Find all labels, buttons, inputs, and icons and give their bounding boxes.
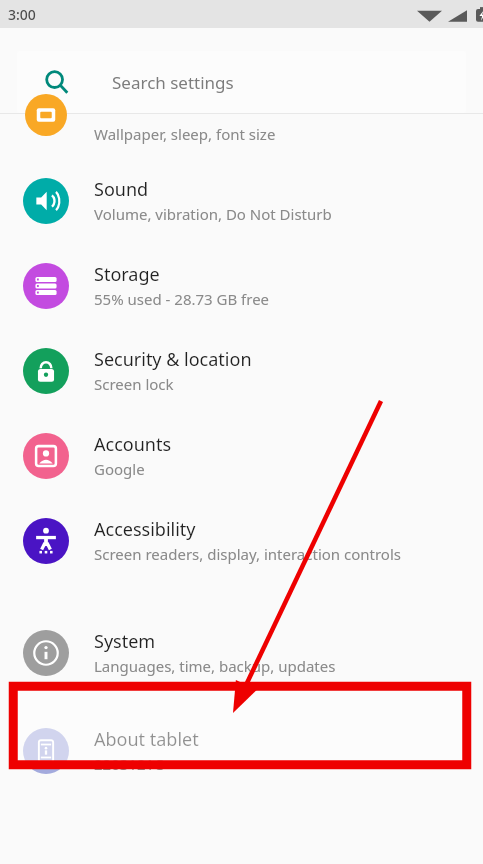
button[interactable]: About tablet (0, 708, 483, 793)
other: Status icons (405, 6, 477, 22)
staticText: Storage (94, 262, 160, 287)
button[interactable]: Wallpaper, sleep, font size (0, 116, 483, 158)
staticText: 3:00 (8, 5, 36, 24)
button[interactable]: Sound (0, 158, 483, 243)
staticText: Languages, time, backup, updates (94, 656, 336, 676)
button[interactable]: Storage (0, 243, 483, 328)
staticText: About tablet (94, 727, 199, 752)
staticText: Screen lock (94, 374, 174, 394)
staticText: System (94, 629, 156, 654)
button[interactable]: Accounts (0, 413, 483, 498)
staticText: Google (94, 459, 145, 479)
button[interactable]: Accessibility (0, 498, 483, 583)
staticText: Sound (94, 177, 149, 202)
staticText: Wallpaper, sleep, font size (94, 124, 276, 144)
staticText: Volume, vibration, Do Not Disturb (94, 204, 332, 224)
staticText: Accessibility (94, 517, 196, 542)
button[interactable]: Security & location (0, 328, 483, 413)
staticText: 2203121C (94, 754, 164, 774)
staticText: Search settings (112, 71, 234, 94)
staticText: Screen readers, display, interaction con… (94, 544, 401, 564)
button[interactable]: Search settings (17, 51, 466, 113)
staticText: Security & location (94, 347, 252, 372)
staticText: 55% used - 28.73 GB free (94, 289, 270, 309)
staticText: Accounts (94, 432, 172, 457)
button[interactable]: System (0, 610, 483, 695)
